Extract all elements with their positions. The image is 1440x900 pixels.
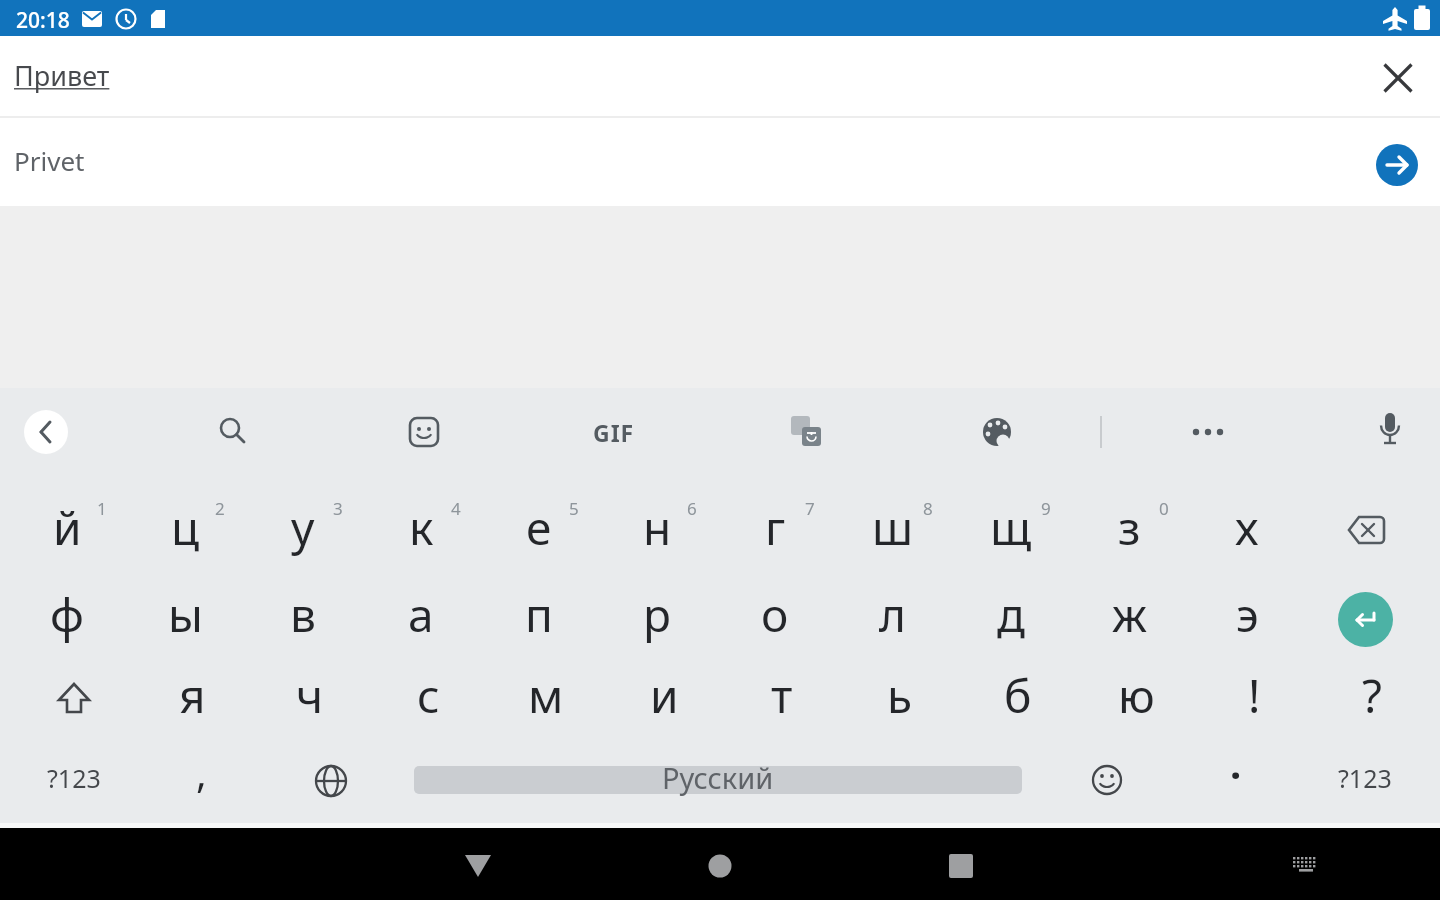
button[interactable] [1338, 592, 1393, 647]
button[interactable]: с [370, 656, 486, 740]
button[interactable] [414, 766, 1022, 794]
staticText: н [643, 496, 672, 559]
staticText: в [290, 583, 316, 646]
button[interactable]: ь [842, 656, 958, 740]
button[interactable]: т [724, 656, 840, 740]
button[interactable] [440, 834, 516, 894]
button[interactable]: у [245, 488, 361, 572]
button[interactable]: · [1178, 735, 1294, 819]
staticText: р [643, 583, 671, 646]
staticText: ? [1362, 664, 1382, 727]
button[interactable]: п [481, 575, 597, 659]
staticText: п [525, 583, 553, 646]
staticText: у [291, 496, 315, 559]
button[interactable] [1307, 488, 1423, 572]
staticText: ю [1118, 664, 1155, 727]
staticText: а [408, 583, 434, 646]
button[interactable] [193, 399, 273, 465]
button[interactable]: а [363, 575, 479, 659]
button[interactable]: ? [1314, 656, 1430, 740]
button[interactable]: о [717, 575, 833, 659]
button[interactable]: х [1189, 488, 1305, 572]
button[interactable]: щ [953, 488, 1069, 572]
button[interactable]: г [717, 488, 833, 572]
staticText: , [196, 745, 207, 799]
button[interactable]: м [488, 656, 604, 740]
staticText: ?123 [1338, 761, 1392, 795]
button[interactable] [682, 834, 758, 894]
button[interactable]: и [606, 656, 722, 740]
button[interactable] [1276, 840, 1334, 888]
button[interactable]: я [134, 656, 250, 740]
button[interactable]: р [599, 575, 715, 659]
staticText: т [771, 664, 793, 727]
staticText: 4 [451, 497, 461, 520]
button[interactable]: ф [9, 575, 125, 659]
staticText: ш [872, 496, 914, 559]
button[interactable]: ц [127, 488, 243, 572]
button[interactable]: GIF [574, 399, 654, 465]
staticText: 20:18 [16, 6, 70, 35]
button[interactable]: к [363, 488, 479, 572]
button[interactable]: в [245, 575, 361, 659]
staticText: э [1236, 583, 1259, 646]
staticText: и [650, 664, 679, 727]
staticText: ы [168, 583, 203, 646]
button[interactable] [1168, 399, 1248, 465]
button[interactable] [1370, 50, 1426, 106]
button[interactable]: л [835, 575, 951, 659]
staticText: б [1004, 664, 1032, 727]
staticText: о [761, 583, 789, 646]
button[interactable]: , [143, 733, 259, 817]
staticText: з [1118, 496, 1141, 559]
button[interactable]: э [1189, 575, 1305, 659]
staticText: 2 [215, 497, 225, 520]
staticText: й [53, 496, 82, 559]
staticText: д [997, 583, 1025, 646]
staticText: ц [171, 496, 200, 559]
staticText: е [526, 496, 552, 559]
staticText: 3 [333, 497, 343, 520]
button[interactable] [923, 834, 999, 894]
staticText: 6 [687, 497, 697, 520]
button[interactable]: ?123 [16, 739, 132, 823]
button[interactable]: е [481, 488, 597, 572]
button[interactable] [24, 410, 68, 454]
staticText: к [409, 496, 434, 559]
button[interactable] [766, 399, 846, 465]
staticText: 5 [569, 497, 579, 520]
button[interactable]: ш [835, 488, 951, 572]
button[interactable]: б [960, 656, 1076, 740]
button[interactable]: ! [1196, 656, 1312, 740]
staticText: ф [50, 583, 84, 646]
button[interactable]: ю [1078, 656, 1194, 740]
staticText: 8 [923, 497, 933, 520]
button[interactable]: н [599, 488, 715, 572]
button[interactable]: ж [1071, 575, 1187, 659]
staticText: ?123 [47, 761, 101, 795]
staticText: · [1230, 747, 1242, 801]
staticText: 7 [805, 497, 815, 520]
button[interactable] [1049, 739, 1165, 823]
button[interactable]: д [953, 575, 1069, 659]
staticText: г [765, 496, 786, 559]
button[interactable]: ч [252, 656, 368, 740]
button[interactable] [16, 656, 132, 740]
staticText: х [1235, 496, 1259, 559]
button[interactable]: й [9, 488, 125, 572]
staticText: 0 [1159, 497, 1169, 520]
button[interactable] [1376, 144, 1418, 186]
button[interactable] [384, 399, 464, 465]
staticText: я [179, 664, 206, 727]
button[interactable] [273, 739, 389, 823]
staticText: ж [1112, 583, 1147, 646]
staticText: ! [1248, 664, 1261, 727]
button[interactable] [1350, 399, 1430, 465]
button[interactable]: з [1071, 488, 1187, 572]
button[interactable]: ы [127, 575, 243, 659]
staticText: 1 [97, 497, 107, 520]
staticText: л [879, 583, 907, 646]
staticText: Привет [14, 57, 110, 94]
button[interactable]: ?123 [1307, 739, 1423, 823]
button[interactable] [957, 399, 1037, 465]
